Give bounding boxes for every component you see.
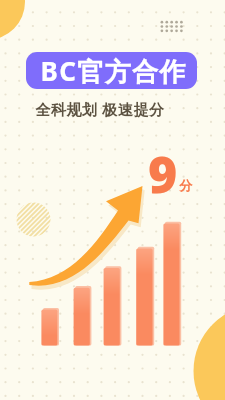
button[interactable] <box>0 0 225 400</box>
